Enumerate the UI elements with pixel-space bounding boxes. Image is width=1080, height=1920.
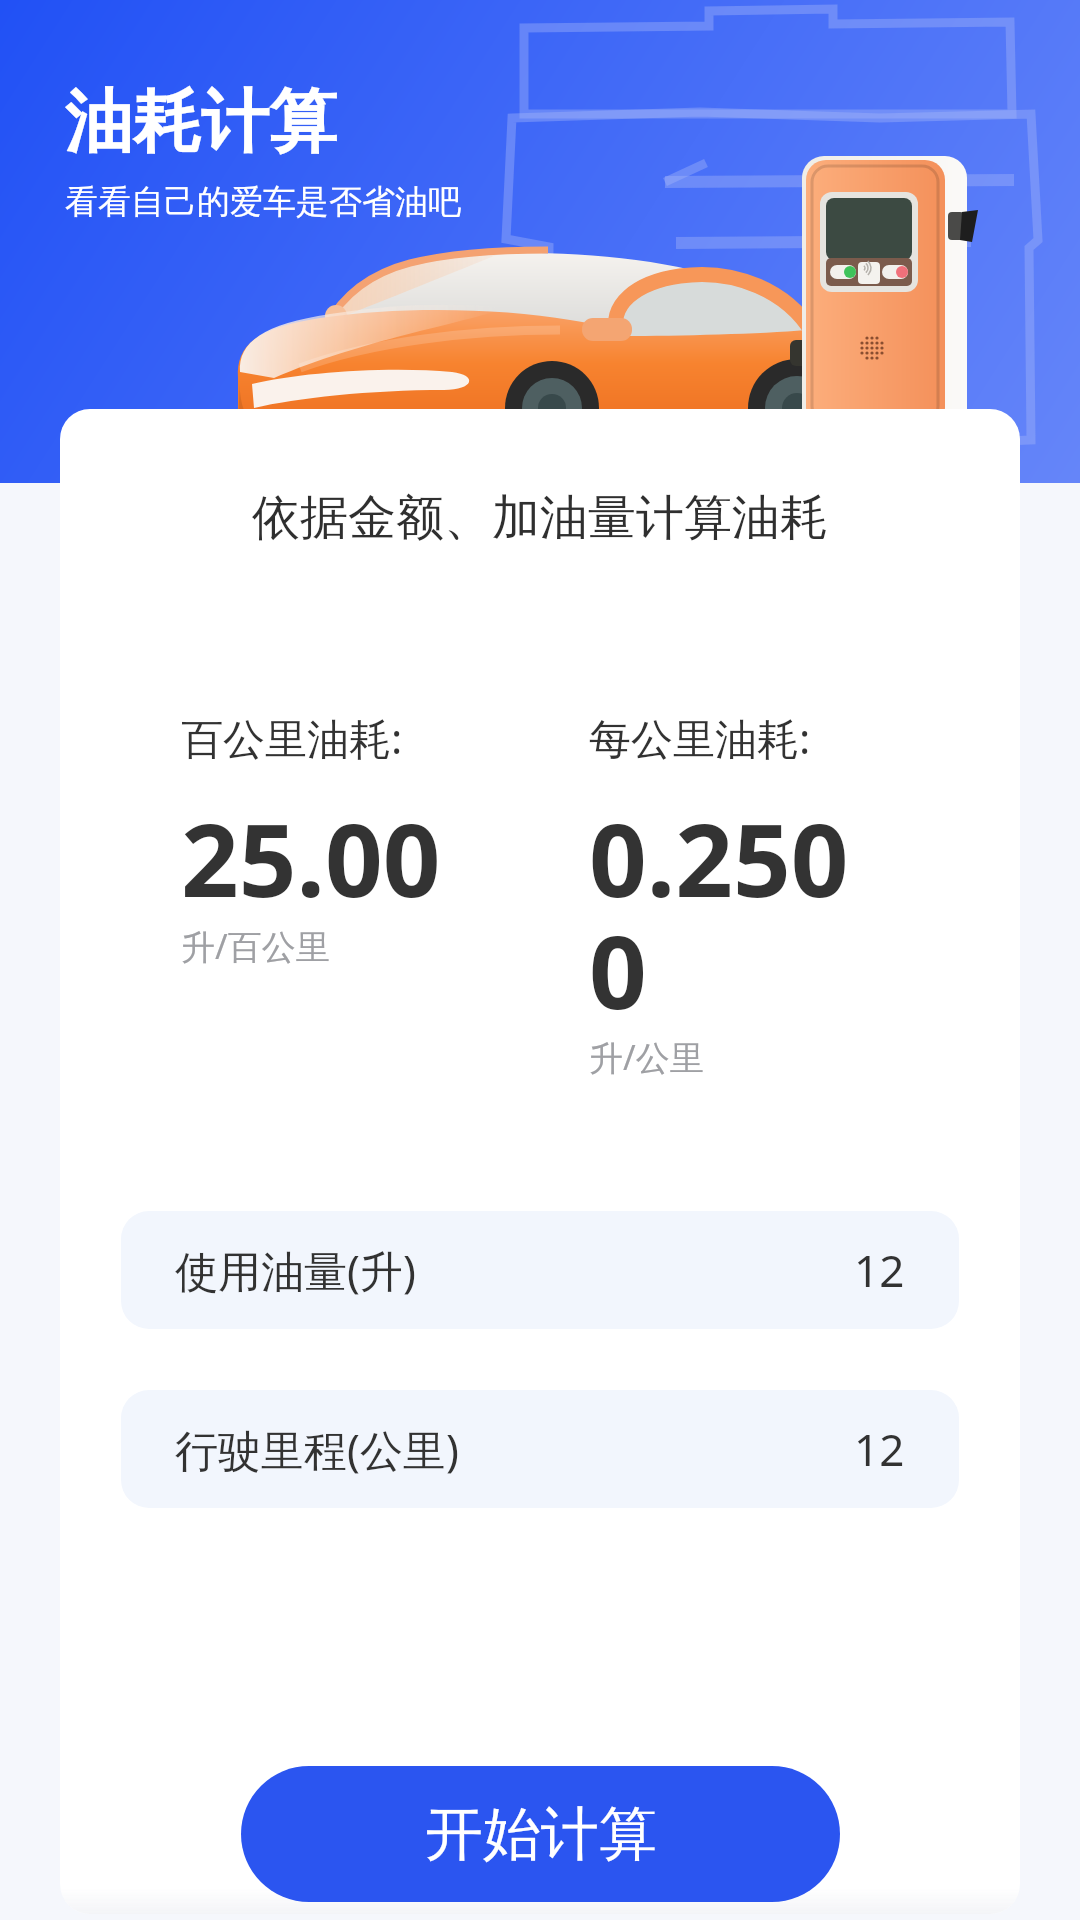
staticText: 每公里油耗: <box>589 709 811 766</box>
staticText: 行驶里程(公里) <box>175 1420 459 1479</box>
staticText: 油耗计算 <box>65 80 337 166</box>
staticText: 开始计算 <box>425 1798 657 1871</box>
staticText: 使用油量(升) <box>175 1241 416 1300</box>
other: 车辆充电插画 <box>0 0 1080 483</box>
staticText: 百公里油耗: <box>181 709 403 766</box>
staticText: 12 <box>854 1419 905 1479</box>
staticText: 25.00 <box>181 789 441 927</box>
staticText: 看看自己的爱车是否省油吧 <box>65 181 461 223</box>
button[interactable]: 行驶里程(公里) <box>121 1390 959 1508</box>
staticText: 升/公里 <box>589 1034 704 1080</box>
staticText: 升/百公里 <box>181 923 330 969</box>
staticText: 0.2500 <box>589 789 859 1038</box>
button[interactable]: 使用油量(升) <box>121 1211 959 1329</box>
button[interactable]: 开始计算 <box>241 1766 840 1902</box>
staticText: 12 <box>854 1240 905 1300</box>
staticText: 依据金额、加油量计算油耗 <box>60 488 1020 548</box>
